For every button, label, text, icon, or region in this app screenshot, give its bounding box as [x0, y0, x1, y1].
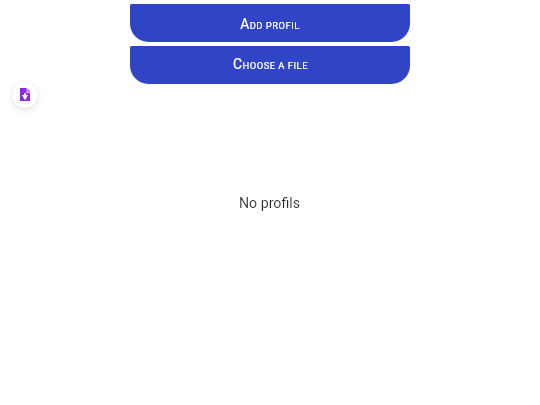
button[interactable]: Download file	[12, 82, 38, 108]
staticText: CHOOSE A FILE	[233, 56, 308, 72]
button[interactable]: ADD PROFIL	[130, 4, 410, 42]
button[interactable]: CHOOSE A FILE	[130, 46, 410, 84]
staticText: ADD PROFIL	[240, 16, 300, 32]
staticText: No profils	[239, 195, 301, 212]
